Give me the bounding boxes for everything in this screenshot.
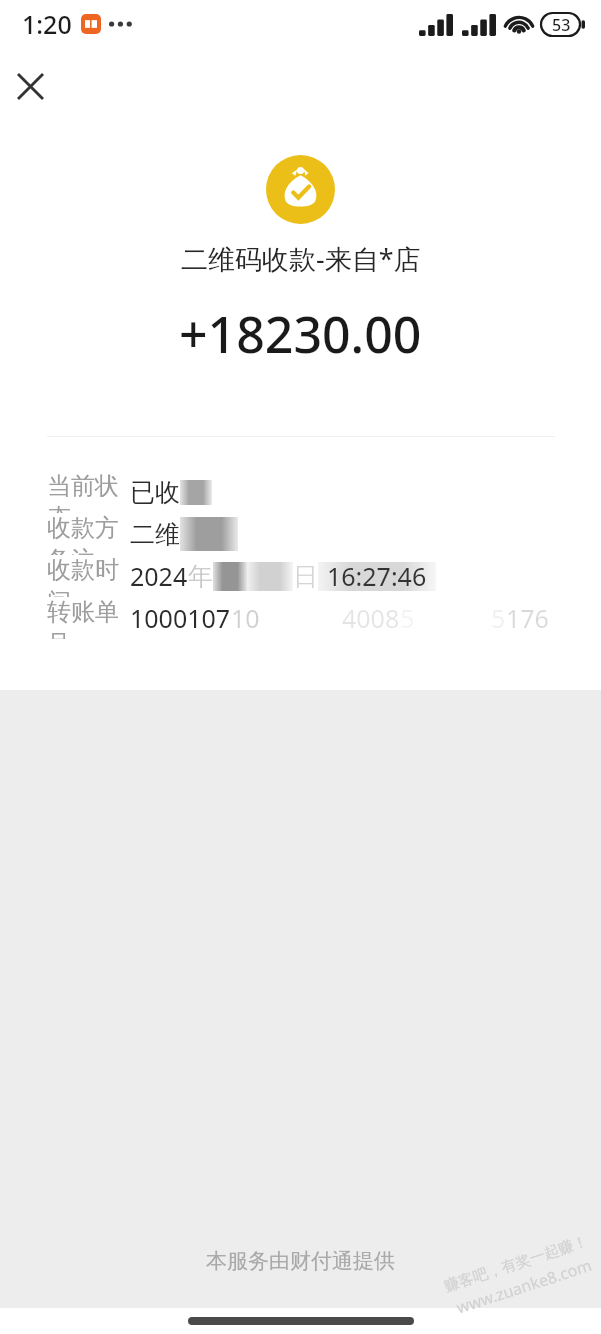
staticText: www.zuanke8.com — [453, 1254, 594, 1319]
staticText: 年 — [188, 561, 213, 592]
staticText: 53 — [552, 14, 571, 36]
staticText: 当前状态 — [47, 471, 130, 513]
staticText: 5 — [491, 601, 506, 635]
staticText: 10 — [231, 601, 260, 635]
staticText: 二维码收款-来自*店 — [181, 240, 421, 277]
staticText: 已收 — [130, 477, 180, 508]
staticText: 4008 — [342, 601, 400, 635]
staticText: 1:20 — [22, 7, 72, 41]
staticText: 176 — [506, 601, 549, 635]
staticText: 日 — [293, 561, 318, 592]
staticText: 16:27:46 — [327, 559, 427, 593]
button[interactable]: Home — [188, 1317, 414, 1325]
staticText: 1000107 — [130, 601, 231, 635]
staticText: 二维 — [130, 519, 180, 550]
staticText: 赚客吧，有奖一起赚！ — [442, 1232, 590, 1296]
staticText: 本服务由财付通提供 — [206, 1248, 395, 1274]
staticText: 2024 — [130, 559, 188, 593]
button[interactable]: Close — [7, 63, 53, 109]
staticText: +18230.00 — [179, 300, 422, 368]
staticText: 收款方备注 — [47, 513, 130, 555]
staticText: 收款时间 — [47, 555, 130, 597]
staticText: 5 — [400, 601, 415, 635]
staticText: 转账单号 — [47, 597, 130, 639]
